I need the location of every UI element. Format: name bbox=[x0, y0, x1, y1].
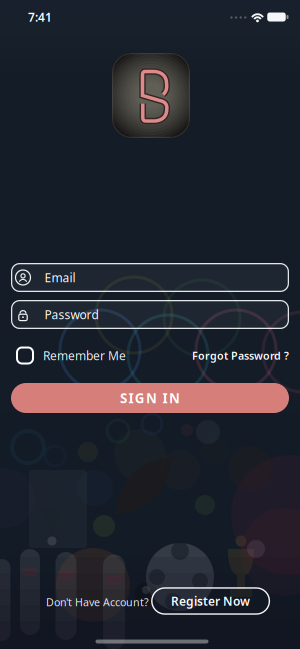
staticText: S bbox=[120, 389, 127, 407]
button[interactable]: Password bbox=[11, 300, 289, 329]
staticText: Remember Me bbox=[43, 347, 126, 363]
staticText: Register Now bbox=[171, 593, 250, 609]
button[interactable]: Remember Me bbox=[16, 346, 126, 364]
staticText: Email bbox=[44, 269, 75, 285]
button[interactable]: Register Now bbox=[151, 587, 270, 615]
staticText: Forgot Password ? bbox=[192, 348, 289, 363]
staticText: G bbox=[135, 389, 145, 407]
staticText: 7:41 bbox=[28, 9, 52, 25]
staticText: Password bbox=[44, 306, 98, 322]
staticText: I bbox=[128, 389, 133, 407]
staticText: Don't Have Account? bbox=[46, 595, 149, 609]
staticText: N bbox=[169, 389, 180, 407]
button[interactable]: S bbox=[11, 383, 289, 413]
button[interactable]: Email bbox=[11, 263, 289, 292]
button[interactable]: Forgot Password ? bbox=[192, 348, 289, 363]
staticText: N bbox=[146, 389, 157, 407]
staticText: I bbox=[163, 389, 168, 407]
